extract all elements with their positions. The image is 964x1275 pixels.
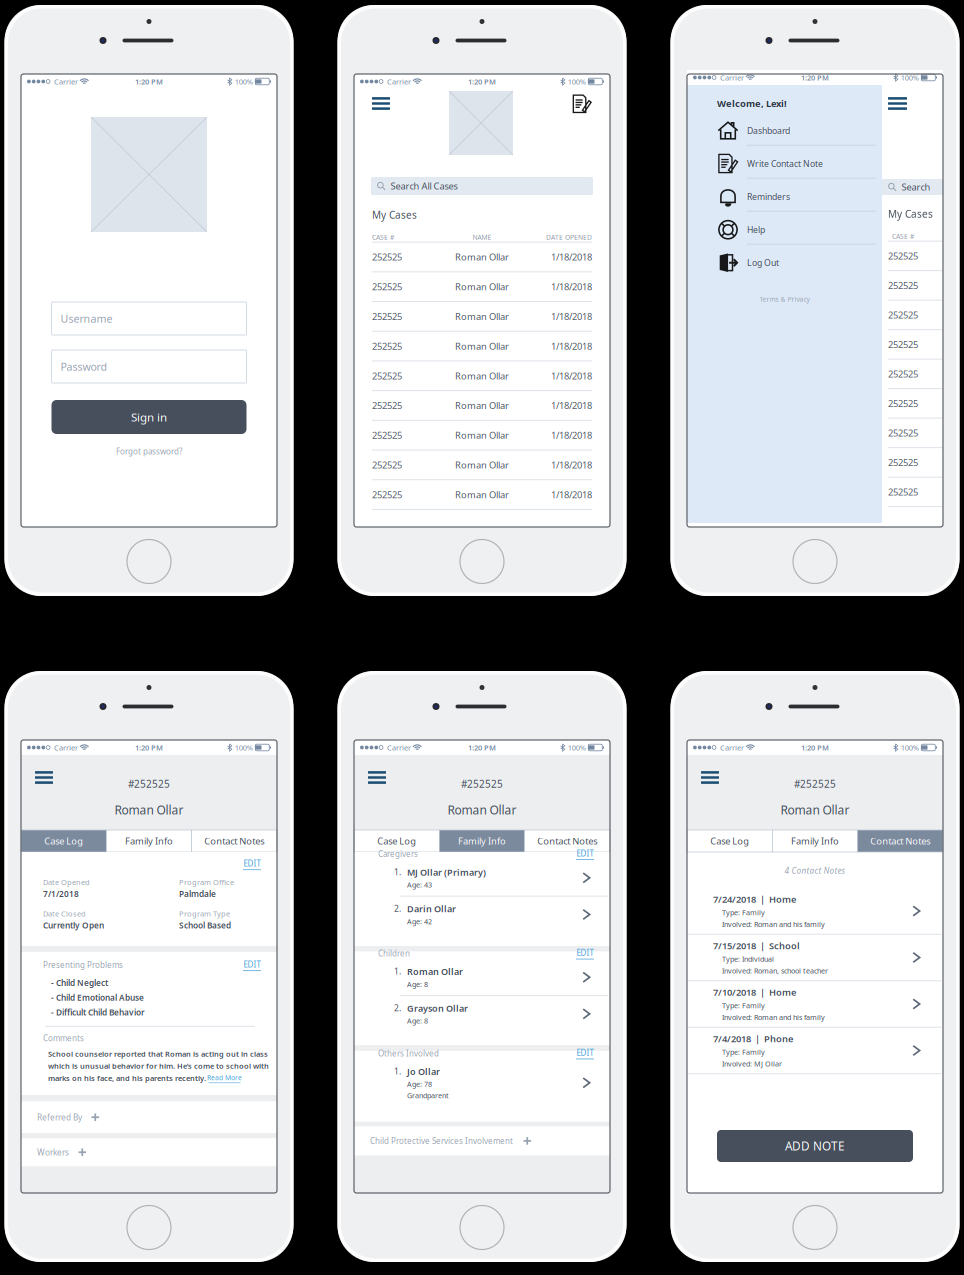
- staticText: marks on his face, and his parents recen…: [48, 1073, 206, 1083]
- button[interactable]: 252525: [882, 330, 943, 360]
- staticText: 252525: [372, 340, 402, 352]
- staticText: Date Closed: [43, 908, 86, 919]
- button[interactable]: Reminders: [687, 183, 882, 216]
- staticText: Program Office: [179, 877, 234, 887]
- button[interactable]: Contact Notes: [858, 830, 943, 852]
- button[interactable]: EDIT: [576, 1047, 594, 1059]
- button[interactable]: Terms & Privacy: [759, 295, 809, 304]
- button[interactable]: 252525: [372, 391, 592, 421]
- button[interactable]: 252525: [372, 480, 592, 510]
- button[interactable]: ADD NOTE: [717, 1130, 913, 1162]
- button[interactable]: 7/15/2018 | School: [687, 935, 943, 980]
- button[interactable]: Menu: [888, 97, 907, 110]
- button[interactable]: 252525: [882, 448, 943, 478]
- button[interactable]: 252525: [882, 301, 943, 330]
- staticText: 4 Contact Notes: [784, 865, 845, 876]
- button[interactable]: Menu: [368, 771, 386, 784]
- staticText: Welcome, Lexi!: [717, 97, 787, 110]
- button[interactable]: 7/24/2018 | Home: [687, 888, 943, 934]
- button[interactable]: 252525: [882, 242, 943, 271]
- staticText: Involved: Roman and his family: [722, 1012, 825, 1022]
- button[interactable]: 2.: [354, 897, 610, 932]
- staticText: #252525: [128, 777, 170, 791]
- button[interactable]: 252525: [372, 332, 592, 361]
- button[interactable]: 252525: [372, 302, 592, 332]
- button[interactable]: Workers: [21, 1138, 277, 1166]
- staticText: 252525: [372, 488, 402, 501]
- button[interactable]: Forgot password?: [116, 446, 182, 457]
- staticText: 7/15/2018 | School: [713, 939, 800, 952]
- button[interactable]: 252525: [882, 360, 943, 389]
- staticText: CASE #: [892, 232, 914, 241]
- staticText: My Cases: [888, 207, 933, 221]
- staticText: Carrier: [383, 76, 411, 87]
- staticText: Roman Ollar: [114, 802, 183, 818]
- button[interactable]: Write Contact Note: [687, 150, 882, 183]
- staticText: Age: 42: [407, 916, 432, 926]
- button[interactable]: 1.: [354, 1059, 610, 1106]
- button[interactable]: EDIT: [243, 858, 261, 870]
- button[interactable]: 252525: [372, 243, 592, 272]
- button[interactable]: Menu: [372, 91, 390, 110]
- button[interactable]: Password: [51, 350, 246, 383]
- button[interactable]: 252525: [372, 272, 592, 302]
- button[interactable]: 252525: [882, 419, 943, 448]
- staticText: Case Log: [44, 835, 83, 847]
- staticText: which is unusual behavior for him. He’s …: [48, 1061, 269, 1071]
- staticText: Sign in: [131, 409, 167, 425]
- staticText: Write Contact Note: [747, 158, 823, 170]
- button[interactable]: Log Out: [687, 249, 882, 282]
- staticText: 1:20 PM: [468, 742, 496, 753]
- button[interactable]: Read More: [207, 1073, 242, 1083]
- staticText: 1:20 PM: [468, 76, 496, 87]
- staticText: 1.: [394, 866, 401, 878]
- button[interactable]: Family Info: [772, 830, 858, 852]
- staticText: 2.: [394, 1002, 401, 1014]
- button[interactable]: Search All Cases: [371, 177, 593, 195]
- staticText: MJ Ollar (Primary): [407, 866, 486, 878]
- button[interactable]: EDIT: [576, 848, 594, 860]
- button[interactable]: Family Info: [106, 830, 192, 852]
- staticText: 100%: [568, 76, 586, 87]
- button[interactable]: 1.: [354, 860, 610, 896]
- button[interactable]: Case Log: [687, 830, 772, 852]
- staticText: Roman Ollar: [455, 310, 509, 323]
- staticText: Roman Ollar: [455, 251, 509, 263]
- button[interactable]: 7/10/2018 | Home: [687, 981, 943, 1027]
- staticText: 252525: [888, 308, 918, 321]
- button[interactable]: Referred By: [21, 1101, 277, 1133]
- button[interactable]: 252525: [372, 450, 592, 480]
- button[interactable]: 2.: [354, 996, 610, 1032]
- button[interactable]: 252525: [882, 478, 943, 507]
- button[interactable]: Case Log: [354, 830, 439, 852]
- staticText: 100%: [235, 742, 253, 753]
- button[interactable]: 252525: [882, 389, 943, 419]
- button[interactable]: 7/4/2018 | Phone: [687, 1028, 943, 1073]
- button[interactable]: Write contact note: [572, 91, 592, 114]
- staticText: Roman Ollar: [455, 429, 509, 441]
- button[interactable]: EDIT: [576, 947, 594, 959]
- button[interactable]: Contact Notes: [192, 830, 277, 852]
- staticText: DATE OPENED: [546, 233, 592, 242]
- staticText: 1/18/2018: [551, 280, 592, 293]
- staticText: Child Protective Services Involvement: [370, 1135, 513, 1146]
- button[interactable]: Family Info: [439, 830, 525, 852]
- staticText: EDIT: [243, 959, 260, 970]
- button[interactable]: Dashboard: [687, 117, 882, 150]
- staticText: Contact Notes: [537, 835, 597, 847]
- button[interactable]: Contact Notes: [525, 830, 610, 852]
- button[interactable]: 252525: [882, 271, 943, 301]
- button[interactable]: Help: [687, 216, 882, 249]
- button[interactable]: 252525: [372, 421, 592, 450]
- button[interactable]: Username: [51, 302, 246, 335]
- button[interactable]: Menu: [35, 771, 53, 784]
- button[interactable]: Sign in: [51, 400, 246, 434]
- button[interactable]: 252525: [372, 361, 592, 391]
- staticText: Forgot password?: [116, 446, 182, 457]
- button[interactable]: Menu: [701, 771, 719, 784]
- button[interactable]: EDIT: [243, 959, 261, 971]
- button[interactable]: Child Protective Services Involvement: [354, 1126, 610, 1155]
- button[interactable]: 1.: [354, 959, 610, 995]
- staticText: Roman Ollar: [407, 965, 463, 978]
- button[interactable]: Case Log: [21, 830, 106, 852]
